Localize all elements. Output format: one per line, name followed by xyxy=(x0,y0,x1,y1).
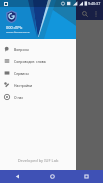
staticText: Вопросы xyxy=(14,47,29,52)
button[interactable]: Вопросы xyxy=(0,43,76,55)
staticText: Настройки xyxy=(14,83,33,88)
button[interactable]: Настройки xyxy=(0,79,76,91)
button[interactable]: Back xyxy=(0,170,35,183)
button[interactable]: More options xyxy=(91,9,101,19)
button[interactable]: Сервисы xyxy=(0,67,76,79)
staticText: 9:40:37 xyxy=(88,1,101,6)
staticText: О нас xyxy=(14,95,24,100)
staticText: Сопроводит. слова xyxy=(14,59,46,64)
staticText: ООО «ЛУЧ» xyxy=(6,26,23,30)
staticText: Умная безопасность xyxy=(6,30,30,33)
staticText: Developed by IUF Lab xyxy=(0,158,76,163)
button[interactable]: Recent apps xyxy=(69,170,103,183)
button[interactable]: Search xyxy=(79,8,91,20)
button[interactable]: Сопроводит. слова xyxy=(0,55,76,67)
button[interactable]: Home xyxy=(35,170,69,183)
staticText: Сервисы xyxy=(14,71,29,76)
button[interactable]: О нас xyxy=(0,91,76,103)
